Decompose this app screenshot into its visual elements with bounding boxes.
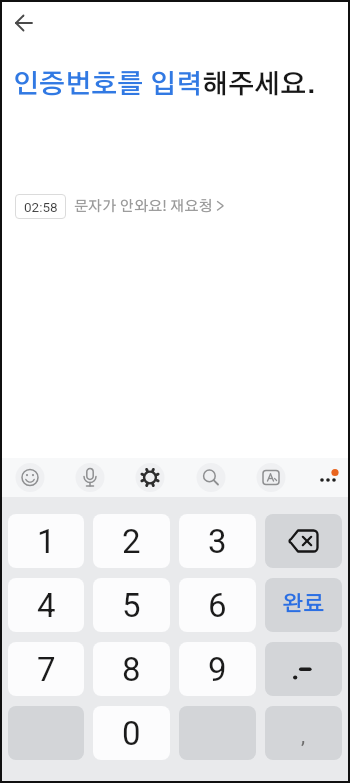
button[interactable]: 9 — [179, 642, 256, 696]
button[interactable] — [8, 7, 40, 39]
button[interactable]: 완료 — [265, 578, 342, 632]
button[interactable] — [265, 514, 342, 568]
staticText: 02:58 — [24, 199, 58, 215]
staticText: , — [301, 724, 306, 749]
button[interactable]: , — [265, 706, 342, 760]
button[interactable] — [311, 460, 345, 494]
button[interactable] — [13, 460, 47, 494]
button[interactable]: 1 — [8, 514, 84, 568]
button[interactable] — [254, 460, 288, 494]
staticText: 인증번호를 입력해주세요. — [13, 72, 316, 99]
staticText: 완료 — [282, 594, 325, 616]
button[interactable] — [194, 460, 228, 494]
staticText: 문자가 안와요! 재요청 > — [74, 199, 225, 214]
staticText: 0 — [122, 714, 141, 753]
button[interactable]: 4 — [8, 578, 84, 632]
button[interactable]: 6 — [179, 578, 256, 632]
button[interactable]: 8 — [93, 642, 170, 696]
button[interactable] — [73, 460, 107, 494]
staticText: 1 — [37, 522, 56, 561]
button[interactable]: 문자가 안와요! 재요청 > — [74, 194, 225, 219]
button[interactable]: 7 — [8, 642, 84, 696]
staticText: 3 — [208, 522, 227, 561]
button[interactable] — [265, 642, 342, 696]
staticText: 7 — [37, 650, 56, 689]
staticText: 2 — [122, 522, 141, 561]
staticText: 6 — [208, 586, 227, 625]
button[interactable]: 2 — [93, 514, 170, 568]
staticText: 8 — [122, 650, 141, 689]
button[interactable]: 5 — [93, 578, 170, 632]
staticText: 5 — [122, 586, 141, 625]
button[interactable] — [133, 460, 167, 494]
button[interactable]: 3 — [179, 514, 256, 568]
button[interactable]: 0 — [93, 706, 170, 760]
staticText: 9 — [208, 650, 227, 689]
staticText: 4 — [37, 586, 56, 625]
